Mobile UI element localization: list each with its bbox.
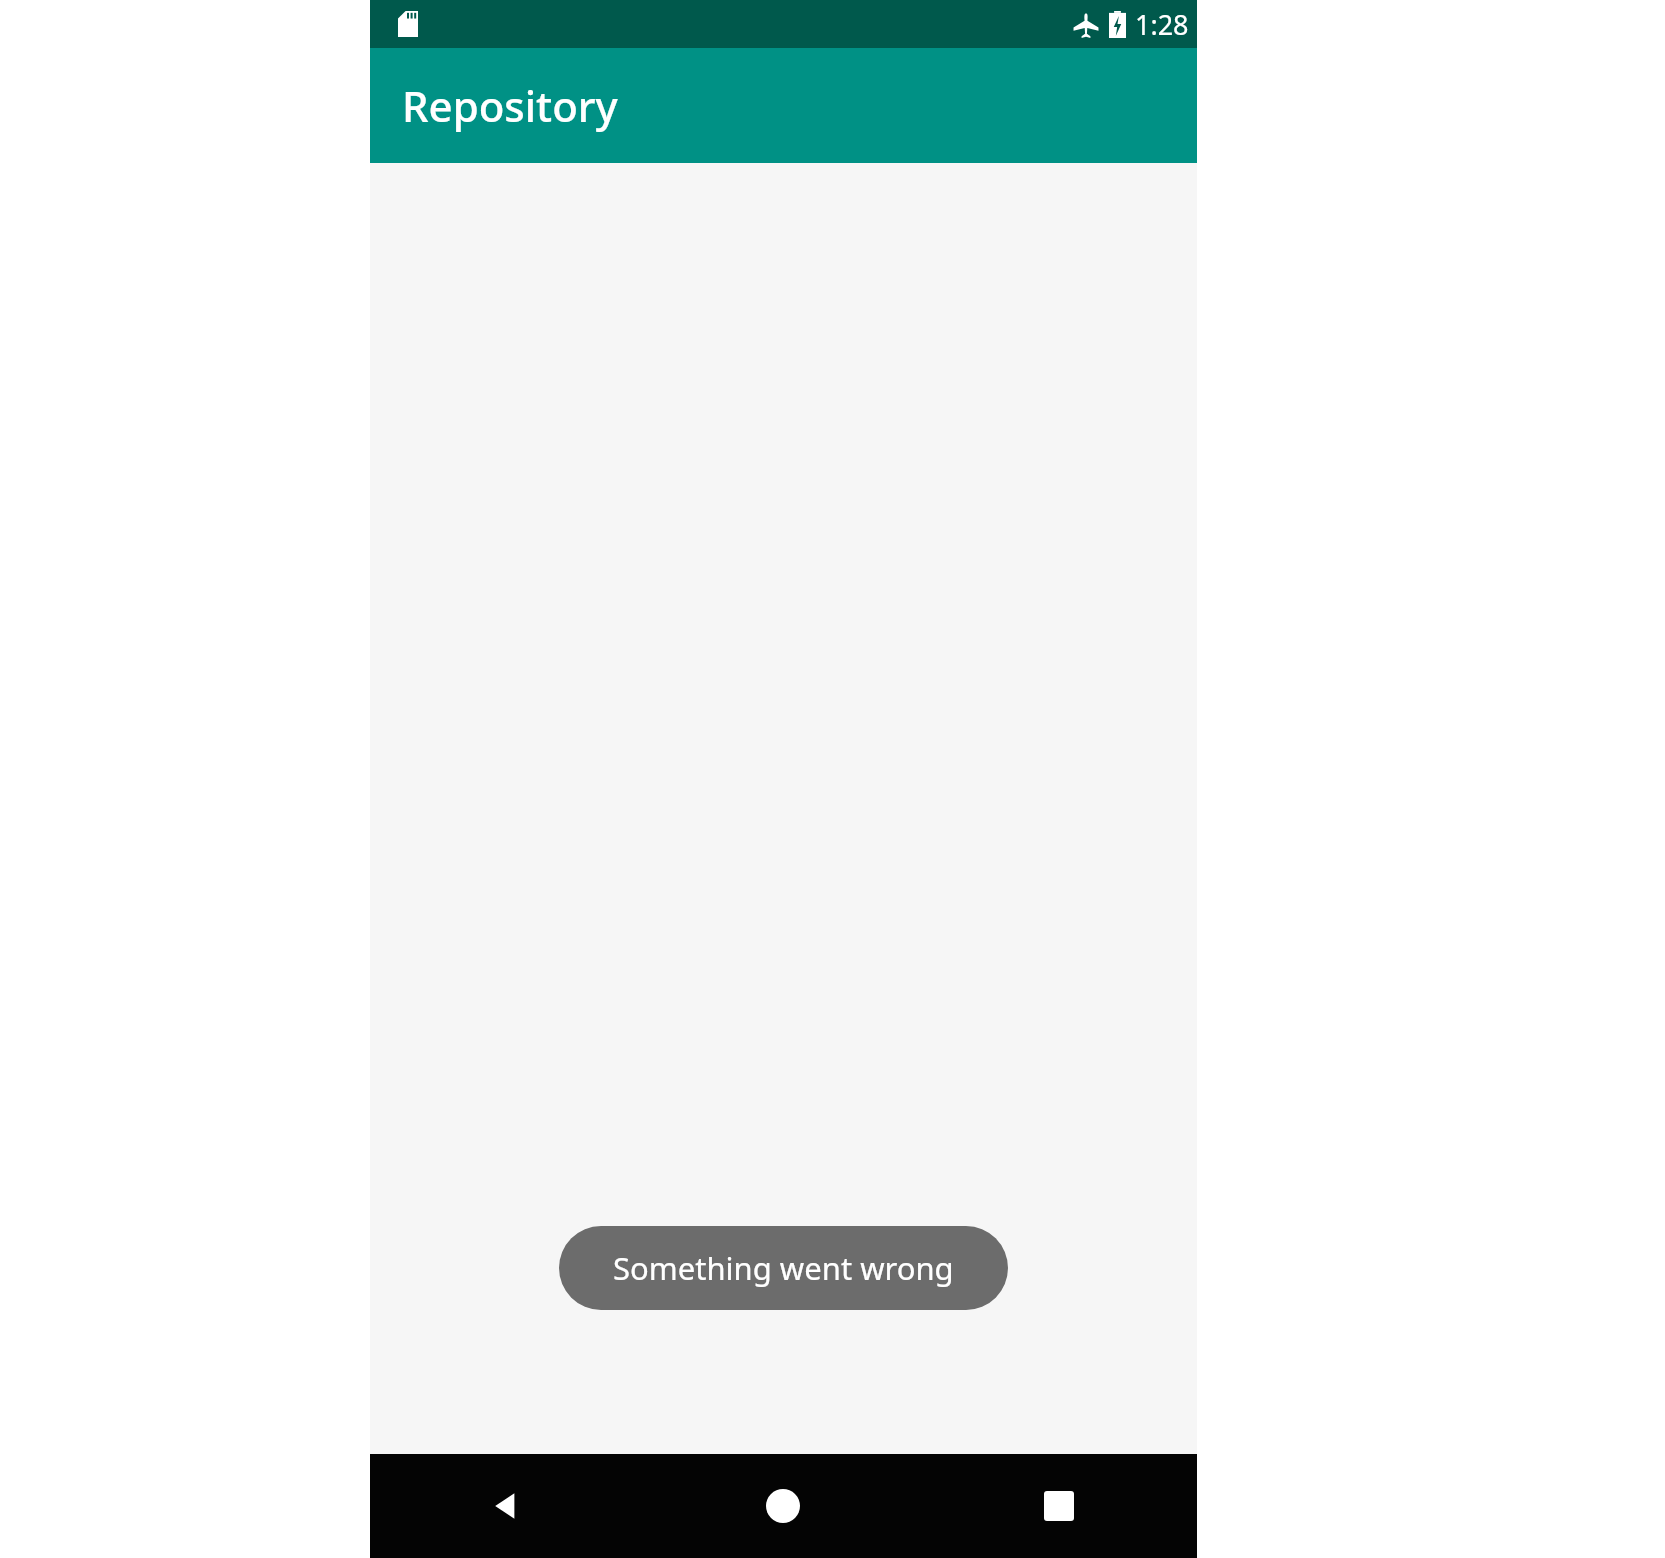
button[interactable]: Recent apps bbox=[921, 1454, 1197, 1558]
staticText: 1:28 bbox=[1135, 6, 1189, 43]
button[interactable]: Back bbox=[370, 1454, 645, 1558]
button[interactable]: Something went wrong bbox=[559, 1226, 1008, 1310]
other: Battery charging bbox=[1109, 11, 1126, 38]
other: Airplane mode bbox=[1073, 12, 1099, 38]
staticText: Repository bbox=[402, 77, 618, 134]
button[interactable]: Home bbox=[645, 1454, 921, 1558]
staticText: Something went wrong bbox=[613, 1247, 954, 1289]
other: SD card bbox=[398, 11, 418, 37]
